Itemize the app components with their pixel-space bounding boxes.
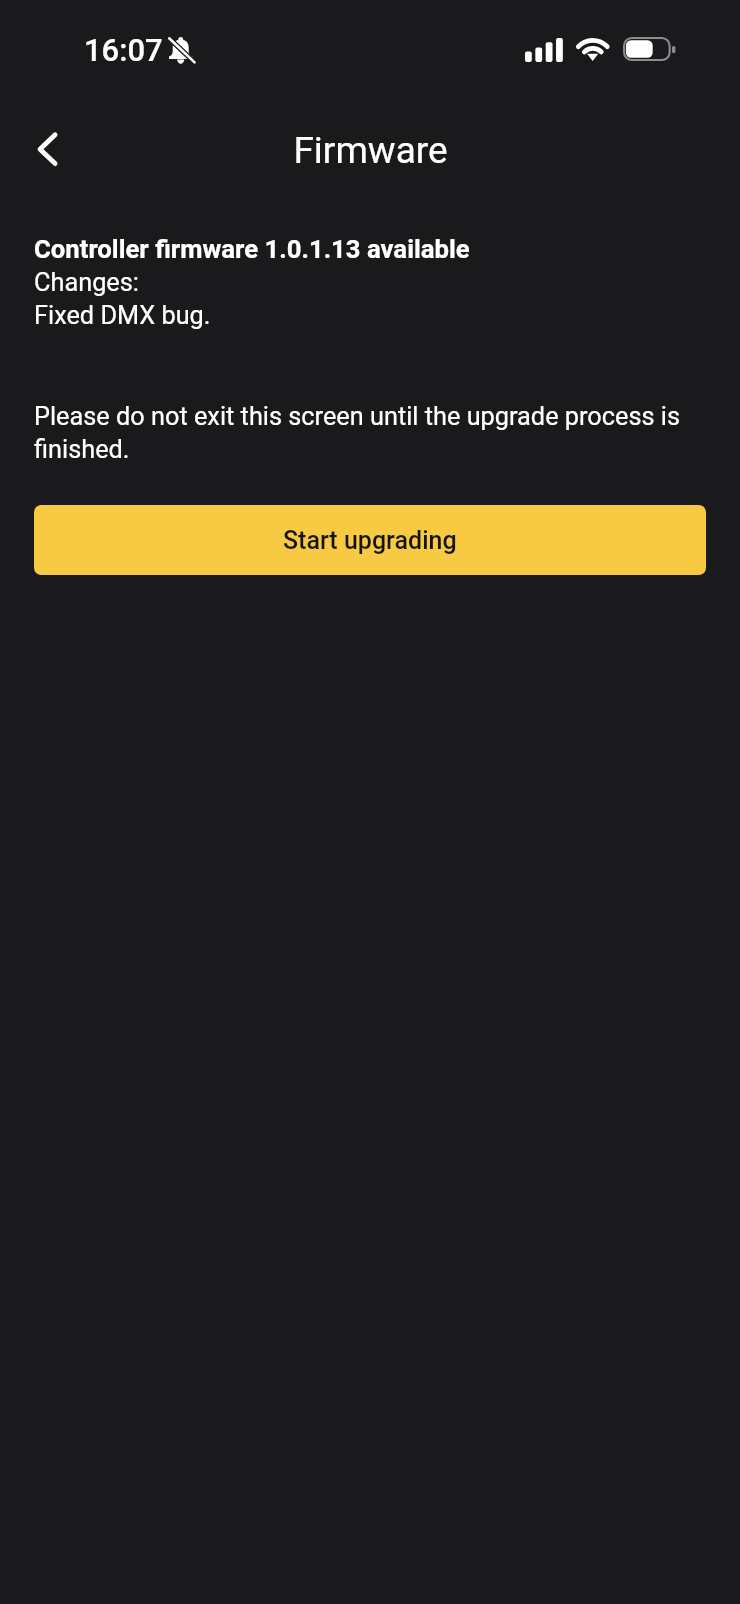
button[interactable]: Start upgrading: [34, 505, 706, 575]
button[interactable]: Back: [14, 113, 76, 175]
staticText: Controller firmware 1.0.1.13 available: [34, 232, 470, 265]
staticText: Start upgrading: [283, 526, 457, 555]
staticText: Please do not exit this screen until the…: [34, 399, 706, 465]
staticText: 16:07: [84, 32, 163, 68]
staticText: Firmware: [293, 129, 448, 172]
staticText: Changes:: [34, 265, 139, 298]
staticText: Fixed DMX bug.: [34, 298, 211, 331]
